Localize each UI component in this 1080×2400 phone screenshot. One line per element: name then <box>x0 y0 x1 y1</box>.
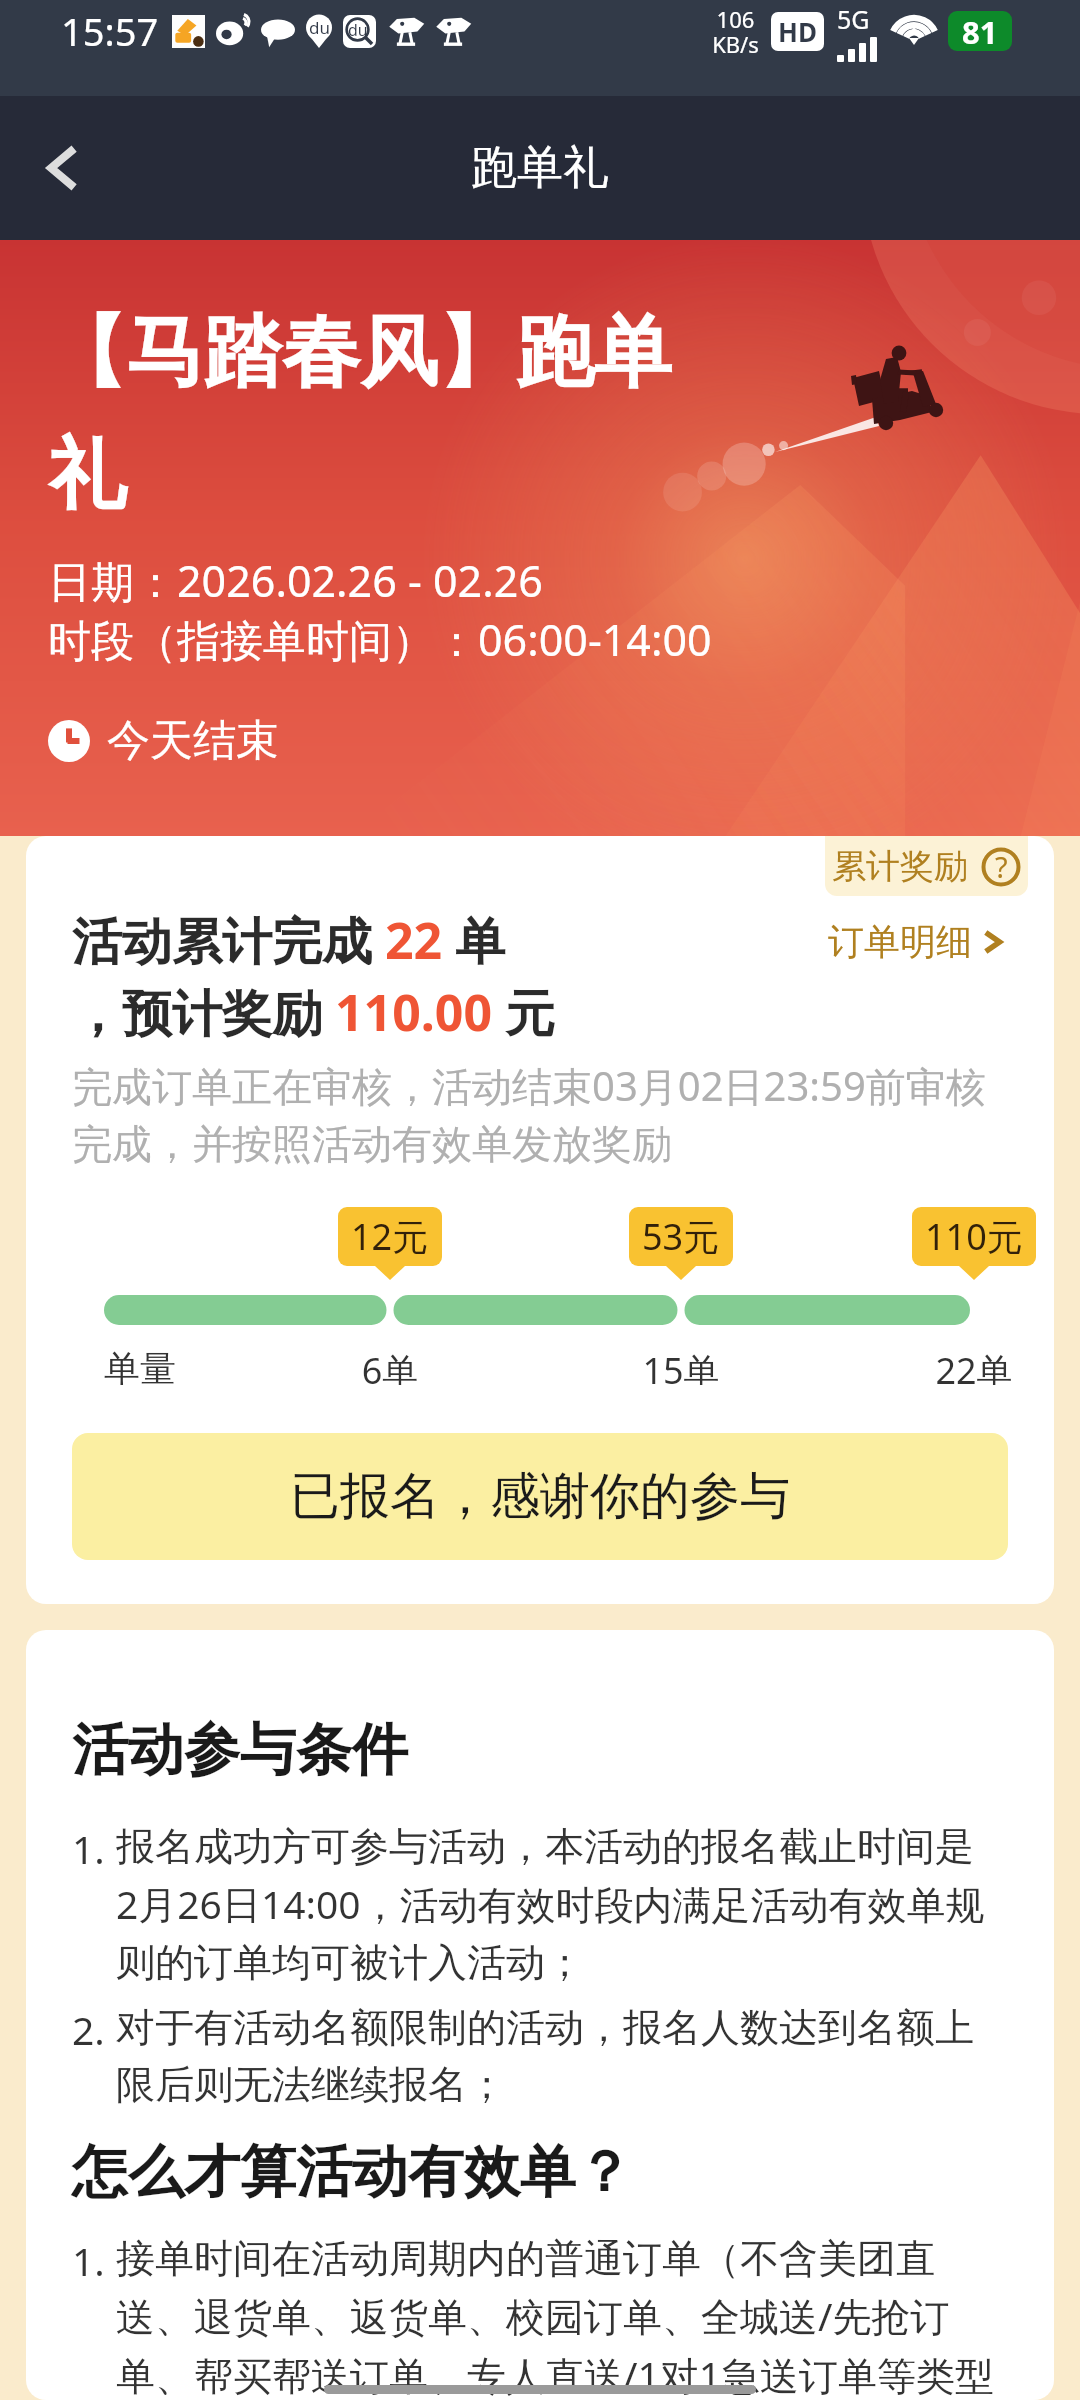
staticText: 1. <box>72 2234 116 2287</box>
staticText: du <box>309 16 330 39</box>
staticText: 已报名，感谢你的参与 <box>290 1465 790 1528</box>
staticText: 接单时间在活动周期内的普通订单（不含美团直送、退货单、返货单、校园订单、全城送/… <box>116 2234 996 2400</box>
staticText: 活动累计完成 22 单 <box>72 906 506 974</box>
button[interactable]: 订单明细 <box>828 919 1008 964</box>
staticText: 106 KB/s <box>712 4 759 59</box>
staticText: 81 <box>962 11 998 51</box>
staticText: 活动参与条件 <box>72 1715 408 1786</box>
staticText: 5G <box>837 2 870 36</box>
staticText: 15单 <box>626 1346 736 1385</box>
staticText: 时段（指接单时间）：06:00-14:00 <box>48 610 712 669</box>
staticText: 完成订单正在审核，活动结束03月02日23:59前审核完成，并按照活动有效单发放… <box>72 1058 1008 1169</box>
staticText: 今天结束 <box>107 714 279 768</box>
staticText: 订单明细 <box>828 919 972 964</box>
staticText: 1. <box>72 1822 116 1875</box>
staticText: 2. <box>72 2003 116 2056</box>
staticText: 15:57 <box>61 5 159 57</box>
staticText: 对于有活动名额限制的活动，报名人数达到名额上限后则无法继续报名； <box>116 2003 996 2109</box>
staticText: 跑单礼 <box>471 139 609 197</box>
staticText: 12元 <box>351 1212 429 1261</box>
staticText: 110元 <box>925 1212 1023 1261</box>
staticText: 累计奖励 <box>832 845 968 888</box>
staticText: ，预计奖励 110.00 元 <box>72 978 556 1046</box>
staticText: 6单 <box>335 1346 445 1385</box>
button[interactable]: Back <box>14 118 114 218</box>
staticText: 报名成功方可参与活动，本活动的报名截止时间是2月26日14:00，活动有效时段内… <box>116 1822 996 1987</box>
staticText: HD <box>778 14 817 49</box>
staticText: 日期：2026.02.26 - 02.26 <box>48 551 543 610</box>
staticText: 22单 <box>919 1346 1029 1385</box>
button[interactable]: 已报名，感谢你的参与 <box>72 1433 1008 1560</box>
staticText: du <box>348 19 368 41</box>
button[interactable]: 累计奖励 <box>825 836 1028 896</box>
staticText: 单量 <box>104 1346 214 1385</box>
staticText: ? <box>995 847 1008 886</box>
staticText: 53元 <box>642 1212 720 1261</box>
staticText: 【马踏春风】跑单 礼 <box>48 304 672 524</box>
staticText: 怎么才算活动有效单？ <box>72 2137 632 2208</box>
